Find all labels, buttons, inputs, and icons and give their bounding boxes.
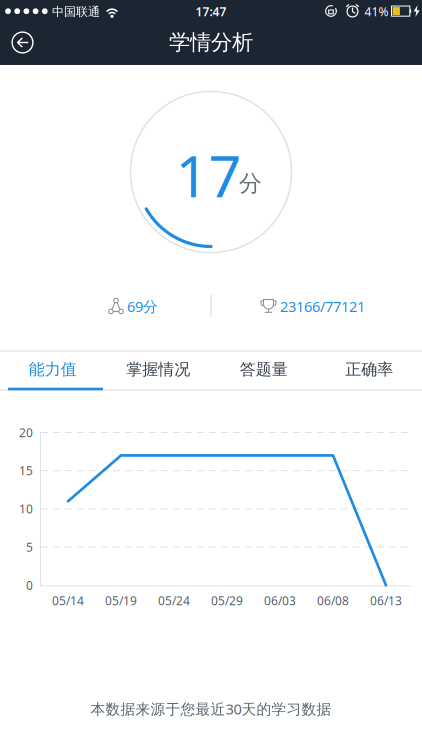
staticText: 17 xyxy=(175,137,241,213)
button[interactable]: 答题量 xyxy=(211,350,316,388)
staticText: 05/29 xyxy=(211,592,243,608)
staticText: 05/14 xyxy=(52,592,84,608)
staticText: 06/08 xyxy=(317,592,349,608)
staticText: 20 xyxy=(19,424,33,440)
staticText: 答题量 xyxy=(240,360,288,379)
staticText: 05/19 xyxy=(105,592,137,608)
staticText: 能力值 xyxy=(29,360,77,379)
button[interactable]: 正确率 xyxy=(316,350,422,388)
staticText: 10 xyxy=(19,501,33,517)
staticText: 本数据来源于您最近30天的学习数据 xyxy=(90,699,331,718)
button[interactable]: 掌握情况 xyxy=(105,350,211,388)
staticText: 06/13 xyxy=(370,592,402,608)
staticText: 41% xyxy=(364,4,388,20)
staticText: 17:47 xyxy=(195,4,226,20)
staticText: 23166/77121 xyxy=(280,296,365,316)
staticText: 学情分析 xyxy=(169,29,253,56)
staticText: 05/24 xyxy=(158,592,190,608)
staticText: 06/03 xyxy=(264,592,296,608)
staticText: 69分 xyxy=(127,296,158,316)
button[interactable]: 能力值 xyxy=(0,350,105,388)
button[interactable]: Back xyxy=(0,22,44,65)
staticText: 正确率 xyxy=(345,360,393,379)
staticText: 中国联通 xyxy=(52,4,100,19)
staticText: 15 xyxy=(19,463,33,479)
staticText: 掌握情况 xyxy=(126,360,190,379)
staticText: 0 xyxy=(26,577,33,593)
staticText: 分 xyxy=(239,170,262,197)
staticText: 5 xyxy=(26,539,33,555)
